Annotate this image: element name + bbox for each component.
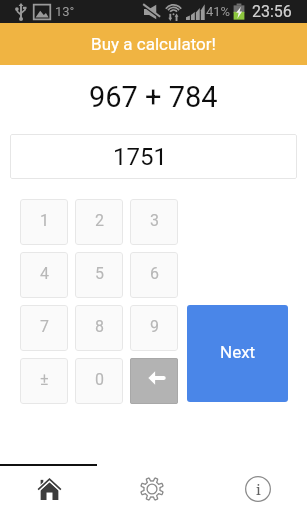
staticText: 23:56: [252, 2, 292, 21]
button[interactable]: 0: [75, 358, 123, 404]
button[interactable]: 9: [130, 305, 178, 351]
button[interactable]: 3: [130, 199, 178, 245]
staticText: ±: [40, 370, 49, 389]
staticText: 8: [95, 317, 104, 336]
staticText: 5: [95, 264, 104, 283]
staticText: 4: [40, 264, 49, 283]
staticText: 41%: [206, 4, 231, 19]
staticText: 6: [150, 264, 159, 283]
button[interactable]: 7: [20, 305, 68, 351]
button[interactable]: 2: [75, 199, 123, 245]
button[interactable]: 8: [75, 305, 123, 351]
button[interactable]: 1751: [10, 134, 297, 179]
staticText: 0: [95, 370, 104, 389]
button[interactable]: 1: [20, 199, 68, 245]
button[interactable]: 6: [130, 252, 178, 298]
button[interactable]: Backspace: [130, 358, 178, 404]
staticText: 1751: [113, 143, 167, 171]
staticText: 967 + 784: [89, 80, 218, 114]
staticText: 7: [40, 317, 49, 336]
staticText: 2: [95, 211, 104, 230]
button[interactable]: Next: [187, 305, 288, 402]
staticText: Next: [220, 342, 256, 362]
staticText: 3: [150, 211, 159, 230]
button[interactable]: Settings: [103, 466, 205, 512]
staticText: i: [256, 479, 261, 499]
staticText: 1: [40, 211, 49, 230]
button[interactable]: Info: [205, 466, 307, 512]
staticText: 13°: [55, 4, 75, 19]
button[interactable]: 5: [75, 252, 123, 298]
button[interactable]: Home: [0, 466, 103, 512]
button[interactable]: 4: [20, 252, 68, 298]
button[interactable]: ±: [20, 358, 68, 404]
staticText: 9: [150, 317, 159, 336]
staticText: Buy a calculator!: [91, 34, 216, 54]
